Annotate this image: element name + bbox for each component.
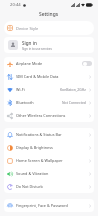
staticText: Sign in to use services bbox=[22, 47, 52, 51]
staticText: Settings bbox=[39, 11, 59, 18]
staticText: Notifications & Status Bar bbox=[16, 132, 88, 137]
staticText: Airplane Mode bbox=[16, 61, 82, 66]
button[interactable]: Do Not Disturb bbox=[4, 180, 94, 193]
staticText: Not Connected bbox=[62, 100, 86, 105]
button[interactable]: Sign in bbox=[4, 37, 94, 53]
staticText: SIM Card & Mobile Data bbox=[16, 74, 88, 79]
staticText: Sound & Vibration bbox=[16, 171, 88, 176]
button[interactable]: Bluetooth bbox=[4, 96, 94, 109]
button[interactable]: Notifications & Status Bar bbox=[4, 128, 94, 141]
button[interactable]: Fingerprint, Face & Password bbox=[4, 199, 94, 212]
staticText: Other Wireless Connections bbox=[16, 113, 88, 118]
staticText: 20:44 bbox=[10, 2, 21, 8]
staticText: Fingerprint, Face & Password bbox=[16, 203, 88, 208]
staticText: Wi-Fi bbox=[16, 87, 60, 92]
staticText: Bluetooth bbox=[16, 100, 62, 105]
button[interactable]: Other Wireless Connections bbox=[4, 109, 94, 122]
button[interactable]: Sound & Vibration bbox=[4, 167, 94, 180]
staticText: KonBaton_2GHz bbox=[60, 87, 86, 92]
staticText: Do Not Disturb bbox=[16, 184, 88, 189]
staticText: Display & Brightness bbox=[16, 145, 88, 150]
button[interactable]: Display & Brightness bbox=[4, 141, 94, 154]
staticText: Device Style bbox=[16, 26, 39, 31]
button[interactable]: Airplane Mode bbox=[4, 57, 94, 70]
staticText: Sign in bbox=[22, 40, 37, 46]
button[interactable]: Device Style bbox=[4, 21, 94, 35]
button[interactable]: Home Screen & Wallpaper bbox=[4, 154, 94, 167]
staticText: Home Screen & Wallpaper bbox=[16, 158, 88, 163]
button[interactable]: Wi-Fi bbox=[4, 83, 94, 96]
button[interactable]: SIM Card & Mobile Data bbox=[4, 70, 94, 83]
